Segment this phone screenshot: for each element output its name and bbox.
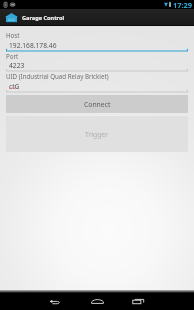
button[interactable]: Connect — [6, 95, 188, 113]
staticText: Garage Control — [22, 14, 65, 22]
button[interactable]: Home — [85, 290, 110, 310]
button[interactable]: Recent apps — [126, 290, 151, 310]
staticText: 17:29 — [173, 0, 192, 9]
staticText: 4223 — [9, 61, 25, 70]
staticText: Port — [6, 52, 19, 60]
staticText: Host — [6, 31, 20, 39]
button[interactable]: Back — [42, 290, 67, 310]
staticText: UID (Industrial Quad Relay Bricklet) — [6, 72, 109, 80]
staticText: ctG — [9, 82, 20, 91]
staticText: 192.168.178.46 — [9, 41, 57, 50]
staticText: Trigger — [85, 130, 109, 139]
staticText: Connect — [84, 100, 111, 109]
